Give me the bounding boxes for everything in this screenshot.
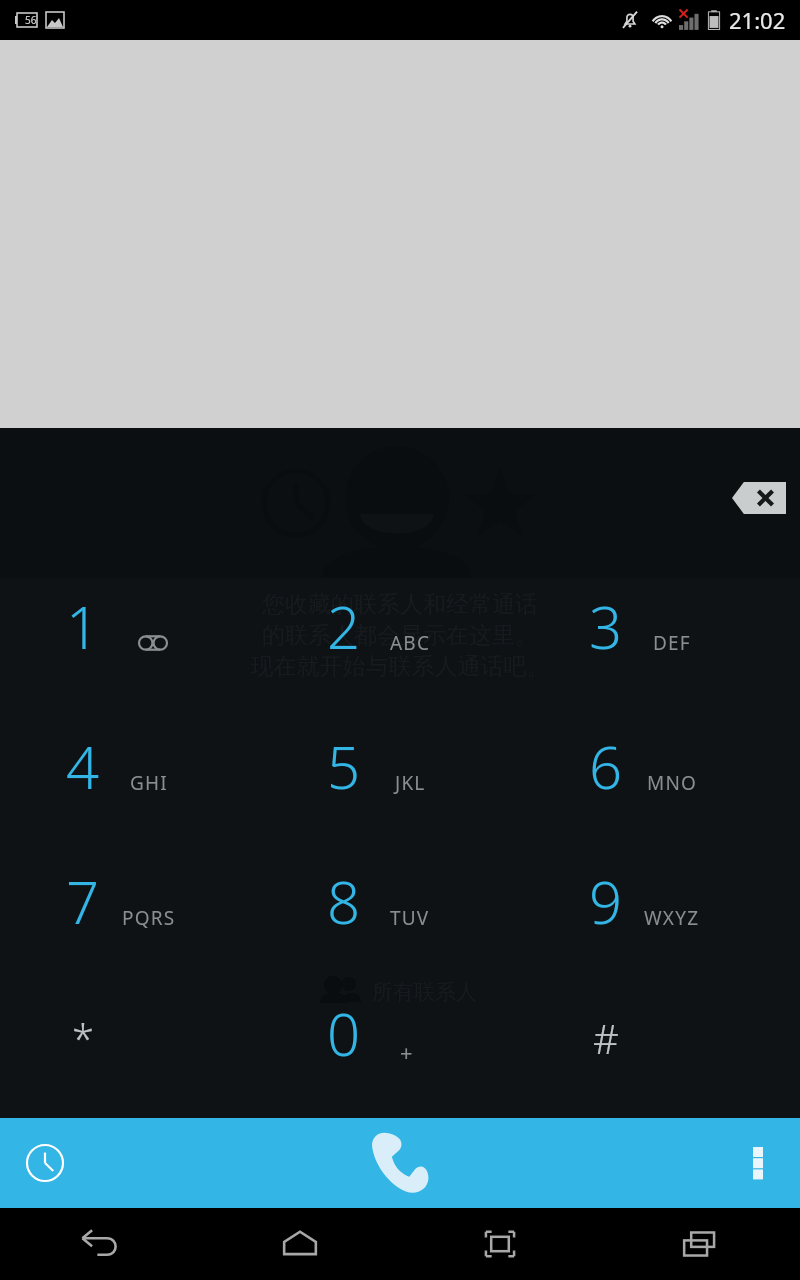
staticText: 5 [327, 727, 361, 806]
staticText: 9 [589, 862, 623, 941]
staticText: 6 [589, 727, 623, 806]
button[interactable]: Key 5 [235, 701, 501, 836]
staticText: * [72, 1011, 95, 1065]
button[interactable]: Key 2 [235, 561, 501, 696]
staticText: 8 [327, 862, 361, 941]
staticText: 所有联系人 [372, 979, 477, 1005]
staticText: 1 [66, 587, 100, 666]
staticText: 21:02 [729, 5, 786, 35]
staticText: PQRS [122, 905, 176, 931]
button[interactable]: Key 3 [497, 561, 763, 696]
button[interactable]: Key 9 [497, 836, 763, 971]
button[interactable]: Key 0 [235, 968, 501, 1103]
staticText: 4 [66, 727, 100, 806]
button[interactable]: Recents [600, 1208, 800, 1280]
button[interactable]: Key # [497, 968, 763, 1103]
staticText: 您收藏的联系人和经常通话 的联系人都会显示在这里。 现在就开始与联系人通话吧。 [200, 590, 600, 681]
button[interactable]: Home [200, 1208, 400, 1280]
button[interactable]: Key 1 [0, 561, 240, 696]
button[interactable]: Call history [0, 1118, 90, 1208]
staticText: 3 [589, 587, 623, 666]
staticText: 56 [25, 13, 37, 27]
staticText: # [593, 1011, 619, 1065]
staticText: + [400, 1037, 413, 1067]
button[interactable]: Call [330, 1118, 470, 1208]
button[interactable]: Key * [0, 968, 240, 1103]
button[interactable]: Key 7 [0, 836, 240, 971]
staticText: JKL [395, 770, 426, 796]
button[interactable]: Back [0, 1208, 200, 1280]
staticText: 7 [66, 862, 100, 941]
button[interactable]: Key 4 [0, 701, 240, 836]
staticText: 您收藏的联系人和经常通话 的联系人都会显示在这里。 现在就开始与联系人通话吧。 [200, 590, 600, 681]
button[interactable]: Key 8 [235, 836, 501, 971]
staticText: 2 [327, 587, 361, 666]
button[interactable]: Screenshot [400, 1208, 600, 1280]
staticText: GHI [130, 770, 168, 796]
staticText: TUV [390, 905, 430, 931]
staticText: 所有联系人 [372, 979, 477, 1005]
staticText: MNO [647, 770, 698, 796]
button[interactable]: Key 6 [497, 701, 763, 836]
button[interactable]: Delete [732, 482, 786, 514]
staticText: 0 [327, 994, 361, 1073]
staticText: WXYZ [644, 905, 700, 931]
button[interactable]: More options [716, 1118, 800, 1208]
staticText: DEF [653, 630, 691, 656]
staticText: ABC [390, 630, 431, 656]
